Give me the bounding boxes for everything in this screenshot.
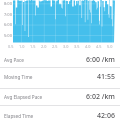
button[interactable]: Elapsed Time [0, 106, 120, 120]
staticText: 6:02 /km [86, 92, 115, 102]
staticText: 1.5 [30, 44, 36, 49]
staticText: Avg Pace [4, 57, 24, 63]
staticText: 5.0 [107, 44, 113, 49]
staticText: 41:55 [97, 72, 115, 82]
button[interactable]: Avg Elapsed Pace [0, 89, 120, 106]
staticText: 8:00 [4, 1, 12, 6]
staticText: 4.0 [85, 44, 91, 49]
staticText: Elapsed Time [4, 113, 34, 119]
staticText: 1.0 [19, 44, 25, 49]
staticText: 42:06 [97, 111, 115, 120]
staticText: 7:00 [4, 12, 12, 17]
staticText: 2.5 [52, 44, 58, 49]
staticText: 0.5 [8, 44, 14, 49]
staticText: 3.5 [74, 44, 80, 49]
staticText: 3.0 [63, 44, 69, 49]
staticText: 5:00 [4, 33, 12, 38]
staticText: Avg Elapsed Pace [4, 94, 43, 100]
button[interactable]: Moving Time [0, 68, 120, 89]
staticText: 2.0 [41, 44, 47, 49]
staticText: 6:00 /km [86, 55, 115, 65]
staticText: Moving Time [4, 74, 33, 80]
staticText: 6:00 [4, 22, 12, 27]
staticText: 4.5 [96, 44, 102, 49]
button[interactable]: Avg Pace [0, 52, 120, 68]
